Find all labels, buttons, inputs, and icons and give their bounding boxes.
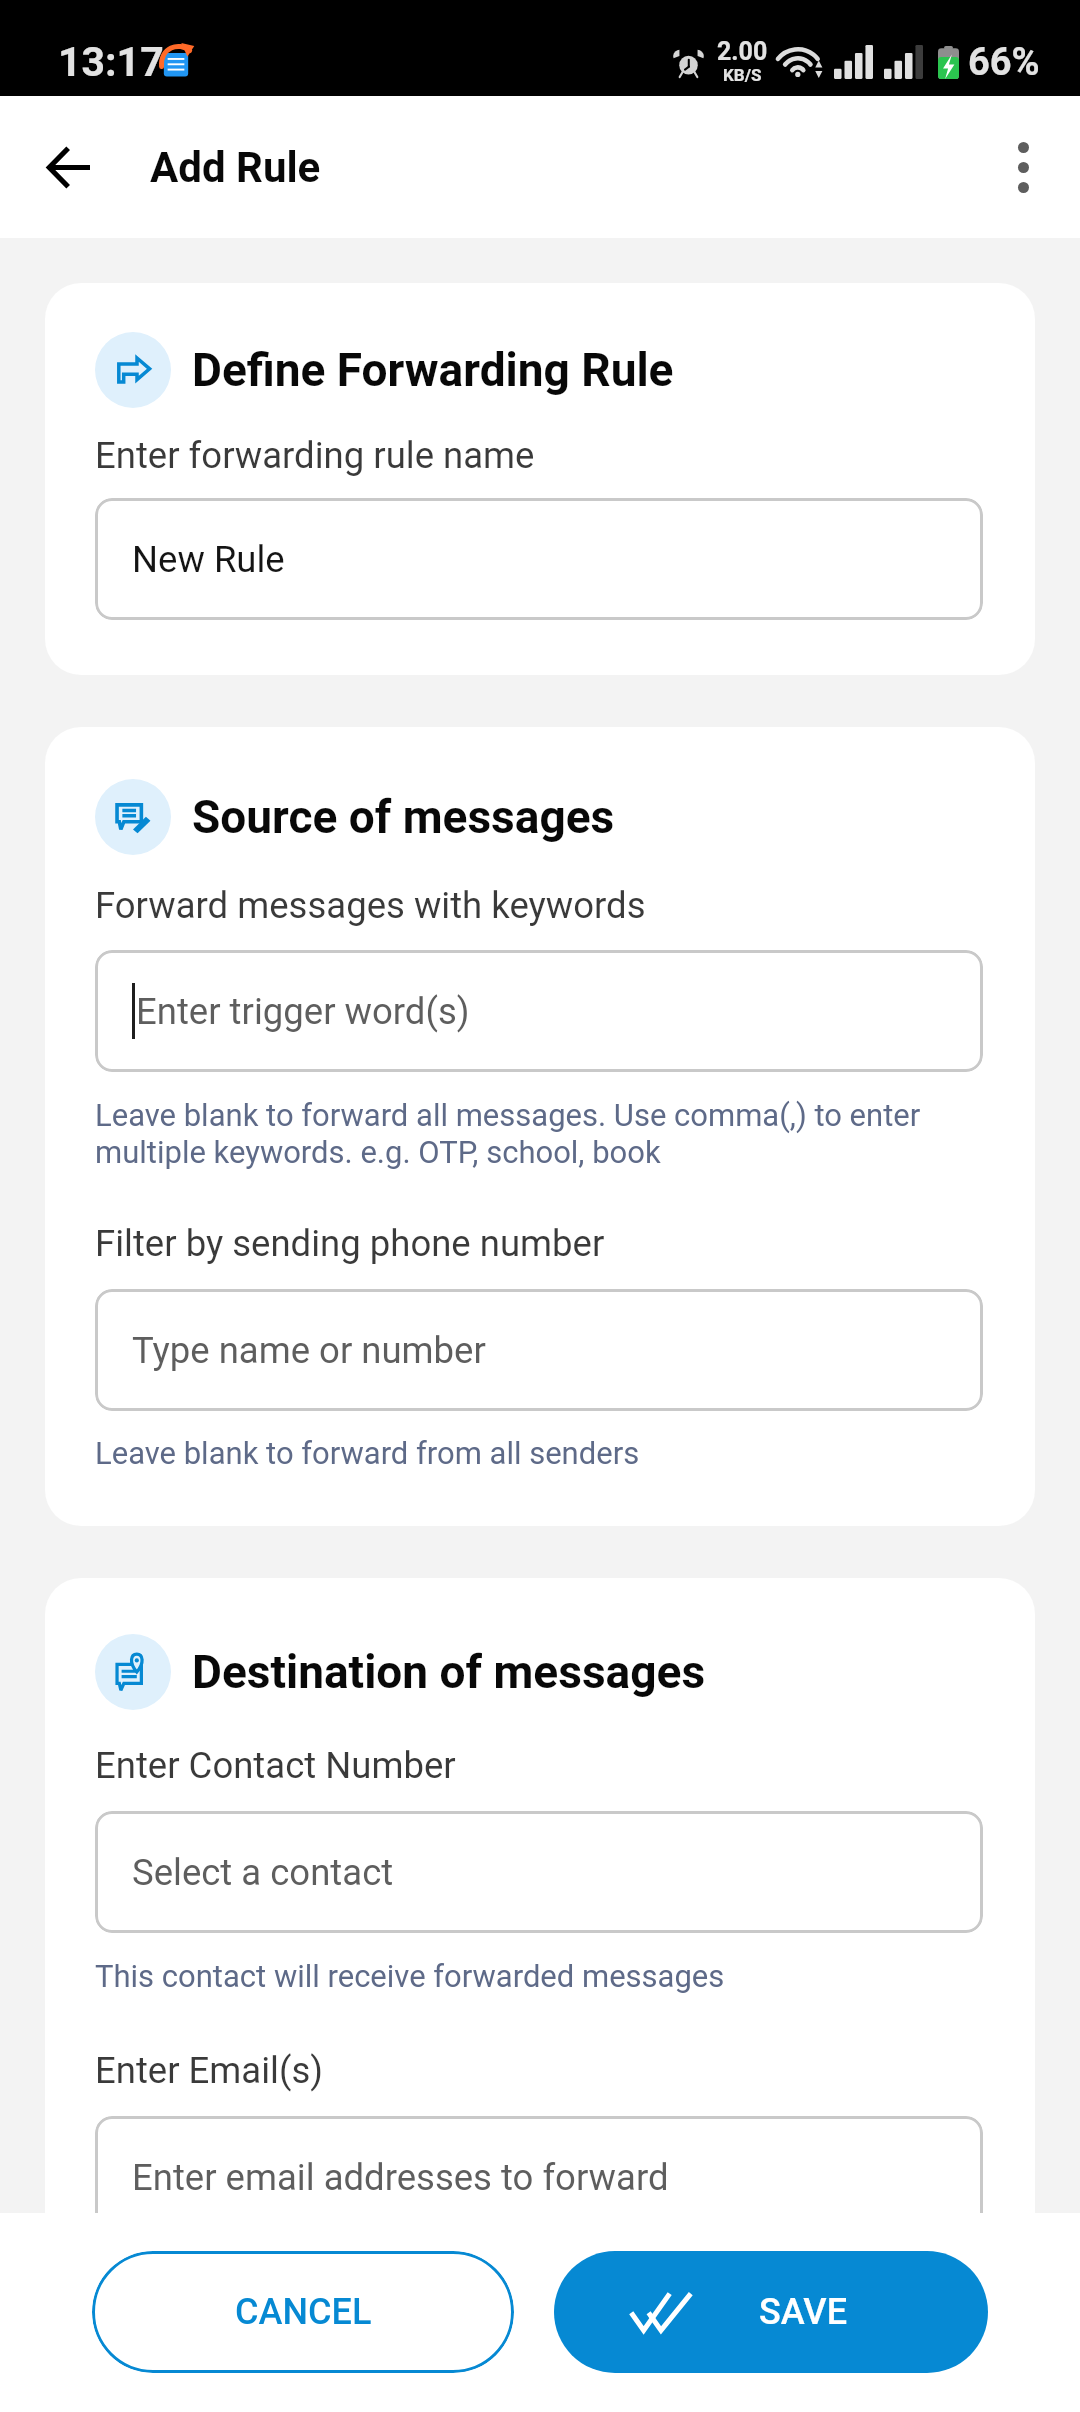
staticText: Enter forwarding rule name	[95, 434, 535, 477]
staticText: Enter trigger word(s)	[136, 990, 470, 1033]
button[interactable]: Back	[26, 124, 112, 210]
button[interactable]: CANCEL	[92, 2251, 514, 2373]
staticText: This contact will receive forwarded mess…	[95, 1958, 725, 1995]
staticText: New Rule	[132, 538, 285, 581]
staticText: 66%	[968, 40, 1040, 85]
button[interactable]: Enter trigger word(s)	[95, 950, 983, 1072]
button[interactable]: SAVE	[554, 2251, 988, 2373]
staticText: Forward messages with keywords	[95, 884, 646, 927]
staticText: Define Forwarding Rule	[192, 343, 674, 397]
staticText: Enter Email(s)	[95, 2049, 324, 2092]
staticText: Type name or number	[132, 1329, 486, 1372]
staticText: 13:17	[58, 38, 164, 86]
staticText: Source of messages	[192, 790, 615, 844]
staticText: KB/S	[723, 66, 762, 85]
staticText: Destination of messages	[192, 1645, 706, 1699]
button[interactable]: Enter email addresses to forward	[95, 2116, 983, 2213]
staticText: Enter Contact Number	[95, 1744, 456, 1787]
button[interactable]: New Rule	[95, 498, 983, 620]
staticText: Select a contact	[132, 1851, 394, 1894]
button[interactable]: Type name or number	[95, 1289, 983, 1411]
staticText: SAVE	[759, 2291, 848, 2333]
staticText: CANCEL	[235, 2291, 372, 2333]
staticText: Leave blank to forward all messages. Use…	[95, 1097, 983, 1171]
staticText: Enter email addresses to forward	[132, 2156, 669, 2199]
staticText: Leave blank to forward from all senders	[95, 1435, 640, 1472]
button[interactable]: More options	[980, 124, 1066, 210]
staticText: Add Rule	[150, 143, 321, 192]
staticText: Filter by sending phone number	[95, 1222, 605, 1265]
button[interactable]: Select a contact	[95, 1811, 983, 1933]
staticText: 2.00	[717, 37, 768, 66]
